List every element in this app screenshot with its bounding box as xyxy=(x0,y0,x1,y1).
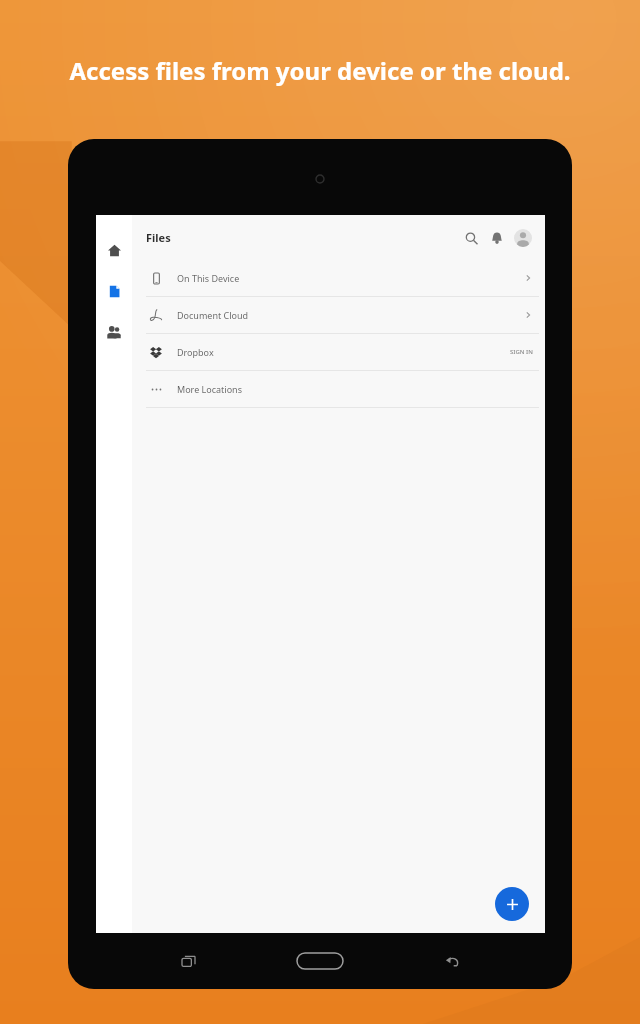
button[interactable]: Create xyxy=(495,887,529,921)
button[interactable]: Recent apps xyxy=(173,946,203,976)
button[interactable]: Notifications xyxy=(484,225,510,251)
staticText: Document Cloud xyxy=(177,309,249,321)
button[interactable]: Search xyxy=(458,225,484,251)
button[interactable]: Home xyxy=(292,948,348,974)
staticText: Files xyxy=(146,230,171,245)
staticText: Access files from your device or the clo… xyxy=(69,54,571,87)
staticText: On This Device xyxy=(177,272,240,284)
button[interactable]: Home xyxy=(99,235,129,265)
button[interactable]: Dropbox xyxy=(132,334,545,370)
button[interactable]: Files xyxy=(99,276,129,306)
staticText: Dropbox xyxy=(177,346,214,358)
button[interactable]: Back xyxy=(437,946,467,976)
button[interactable]: Account xyxy=(510,225,536,251)
button[interactable]: Document Cloud xyxy=(132,297,545,333)
button[interactable]: Shared xyxy=(99,317,129,347)
staticText: SIGN IN xyxy=(510,348,533,356)
button[interactable]: More Locations xyxy=(132,371,545,407)
staticText: More Locations xyxy=(177,383,242,395)
button[interactable]: On This Device xyxy=(132,260,545,296)
